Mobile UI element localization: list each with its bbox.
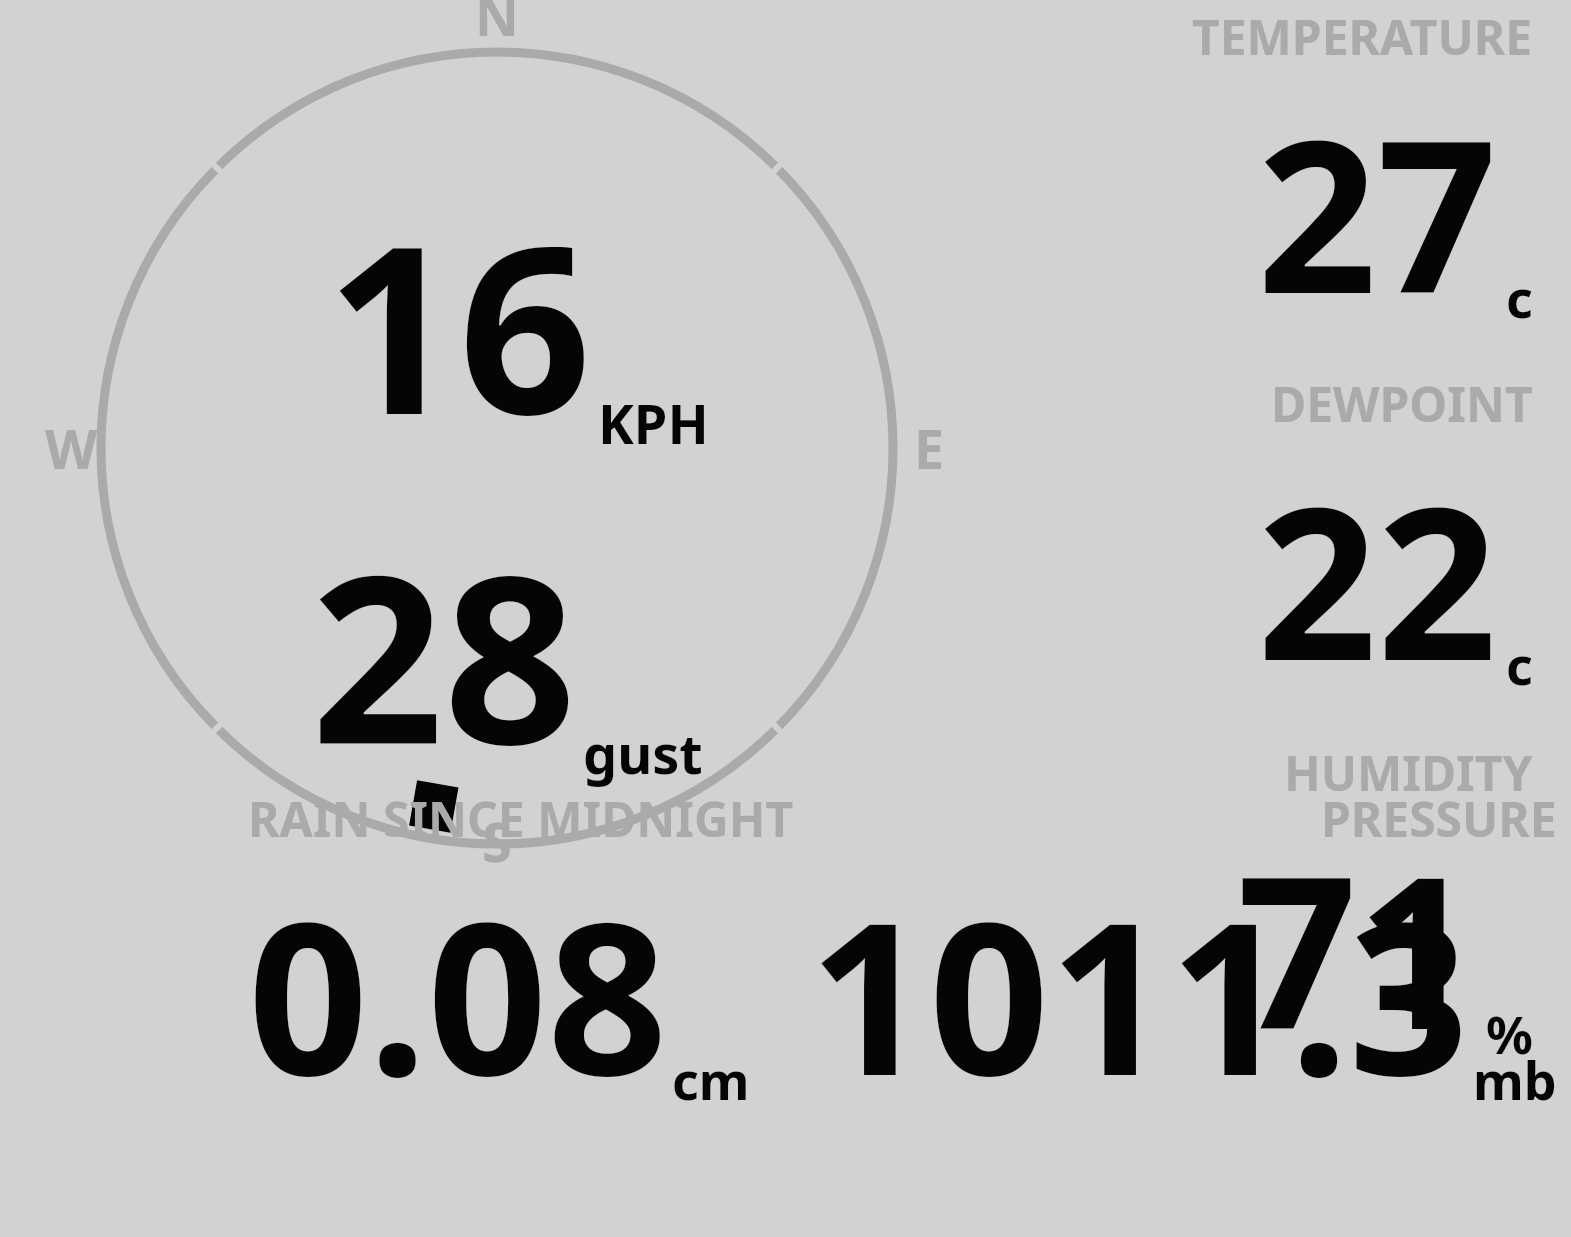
staticText: 27 <box>1257 69 1498 355</box>
button[interactable]: 0.08 <box>248 851 750 1137</box>
button[interactable]: HUMIDITY <box>1237 740 1533 1091</box>
staticText: c <box>1506 629 1533 700</box>
staticText: 71 <box>1237 805 1478 1091</box>
staticText: HUMIDITY <box>1284 740 1533 805</box>
staticText: gust <box>583 716 703 790</box>
button[interactable]: DEWPOINT <box>1257 371 1533 722</box>
staticText: mb <box>1473 1044 1557 1115</box>
staticText: DEWPOINT <box>1271 371 1533 436</box>
button[interactable]: TEMPERATURE <box>1192 4 1533 355</box>
staticText: % <box>1486 998 1533 1069</box>
staticText: KPH <box>598 386 709 460</box>
staticText: 1011.3 <box>809 851 1469 1137</box>
button[interactable]: 1011.3 <box>809 851 1557 1137</box>
staticText: 28 <box>311 496 577 812</box>
staticText: W <box>45 411 98 485</box>
staticText: cm <box>672 1044 750 1115</box>
staticText: PRESSURE <box>1321 786 1557 851</box>
staticText: RAIN SINCE MIDNIGHT <box>248 786 794 851</box>
staticText: E <box>914 411 945 485</box>
staticText: 22 <box>1257 436 1498 722</box>
button[interactable]: Wind compass <box>55 6 939 890</box>
staticText: 0.08 <box>248 851 668 1137</box>
staticText: S <box>482 804 512 878</box>
staticText: TEMPERATURE <box>1192 4 1533 69</box>
staticText: 16 <box>326 166 592 482</box>
staticText: N <box>475 0 519 52</box>
staticText: c <box>1506 262 1533 333</box>
